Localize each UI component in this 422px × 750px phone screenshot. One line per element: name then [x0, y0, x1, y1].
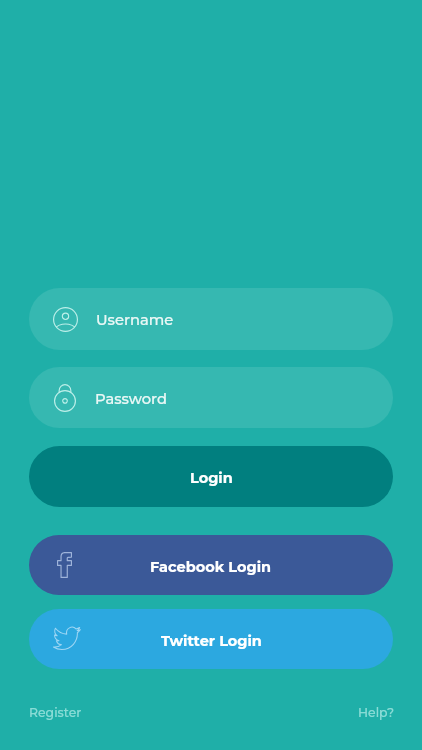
staticText: Username [96, 311, 174, 329]
button[interactable]: Login [29, 446, 393, 507]
button[interactable]: Twitter Login [29, 609, 393, 669]
button[interactable]: Register [29, 705, 82, 720]
staticText: Register [29, 705, 82, 720]
staticText: Twitter Login [161, 632, 262, 650]
staticText: Help? [358, 705, 395, 720]
staticText: Password [95, 390, 167, 408]
button[interactable]: Password [29, 367, 393, 428]
button[interactable]: Help? [358, 705, 395, 720]
other: User [53, 307, 78, 332]
button[interactable]: User [29, 288, 393, 350]
other: Twitter Login [52, 627, 81, 651]
other: Password [54, 384, 76, 412]
button[interactable]: Facebook Login [29, 535, 393, 595]
other: Facebook Login [57, 552, 72, 578]
staticText: Facebook Login [150, 558, 272, 576]
staticText: Login [190, 469, 233, 487]
